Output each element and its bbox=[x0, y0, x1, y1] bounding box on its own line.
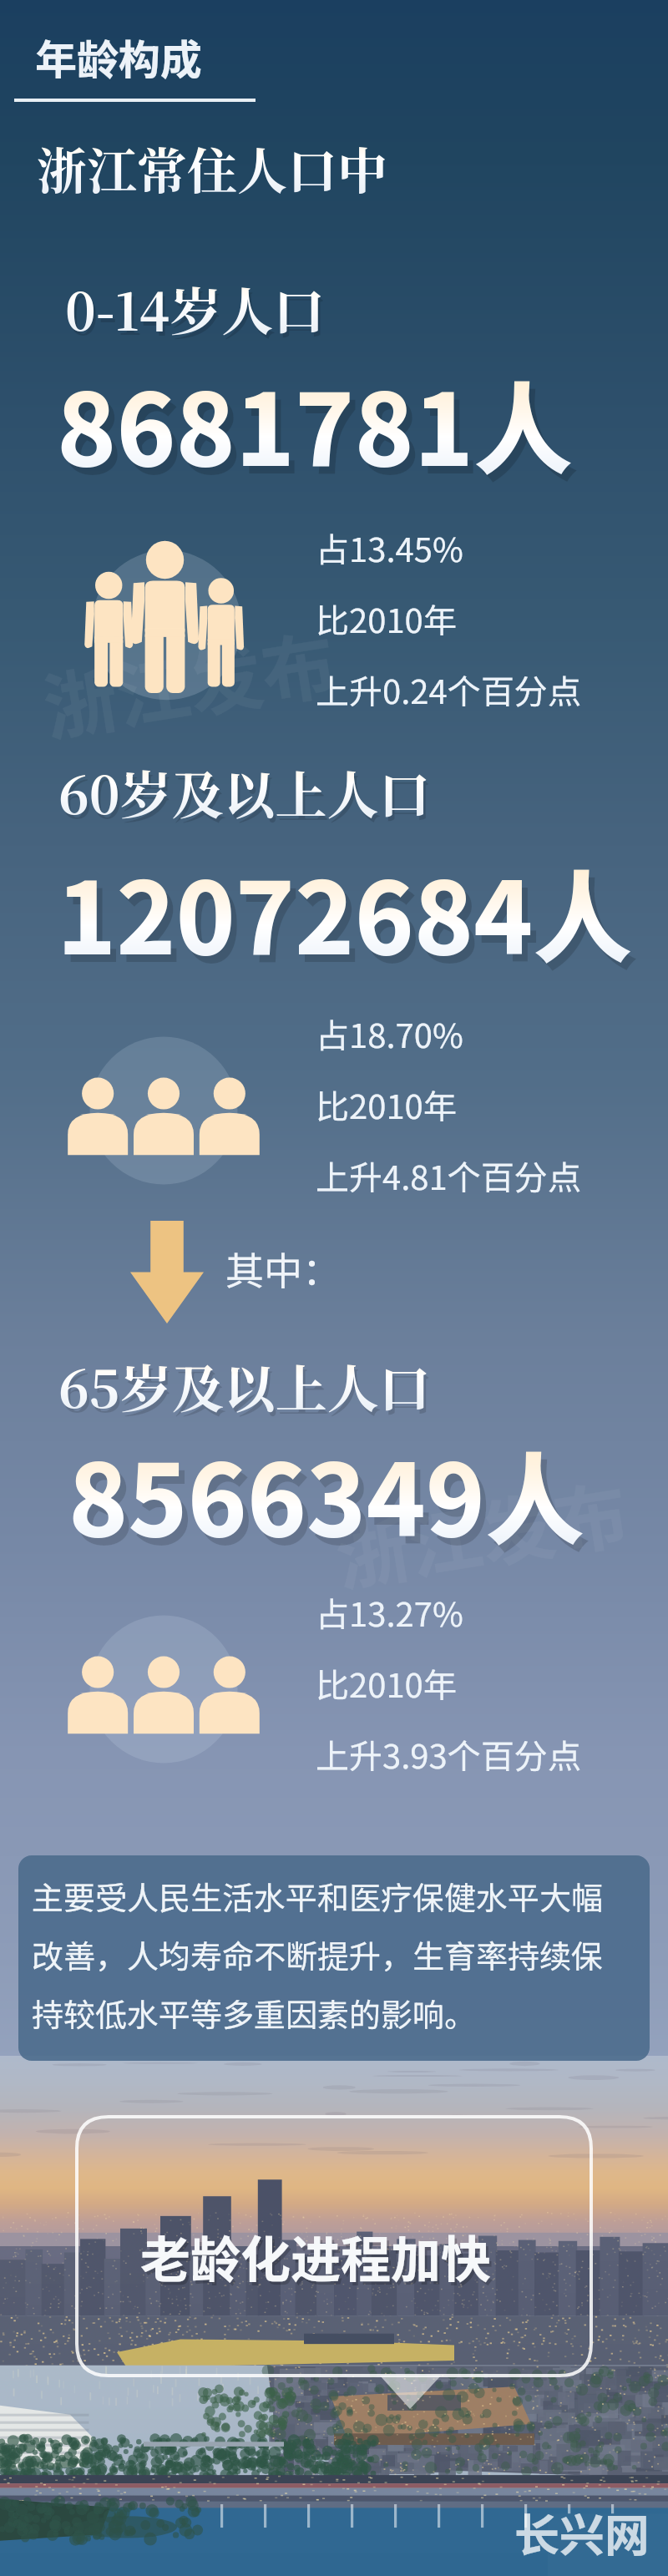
staticText: 8681781人 bbox=[57, 351, 573, 494]
staticText: 上升3.93个百分点 bbox=[316, 1730, 581, 1779]
staticText: 65岁及以上人口 bbox=[61, 1353, 433, 1427]
staticText: 老龄化进程加快 bbox=[143, 2223, 493, 2295]
staticText: 60岁及以上人口 bbox=[58, 755, 431, 829]
staticText: 上升4.81个百分点 bbox=[316, 1151, 581, 1200]
staticText: 浙江发布 bbox=[327, 1456, 635, 1606]
staticText: 长兴网 bbox=[514, 2499, 650, 2564]
staticText: 比2010年 bbox=[316, 595, 457, 643]
staticText: 12072684人 bbox=[57, 839, 633, 983]
staticText: 12072684人 bbox=[63, 847, 639, 990]
staticText: 其中： bbox=[225, 1241, 341, 1297]
staticText: 8566349人 bbox=[74, 1429, 590, 1572]
staticText: 8681781人 bbox=[63, 358, 579, 502]
staticText: 占13.27% bbox=[316, 1588, 463, 1637]
staticText: 主要受人民生活水平和医疗保健水平大幅改善，人均寿命不断提升，生育率持续保持较低水… bbox=[32, 1873, 616, 2036]
staticText: 占18.70% bbox=[316, 1010, 463, 1058]
staticText: 60岁及以上人口 bbox=[61, 759, 433, 833]
staticText: 0-14岁人口 bbox=[68, 276, 328, 350]
staticText: 上升0.24个百分点 bbox=[316, 666, 581, 714]
staticText: 8566349人 bbox=[68, 1421, 584, 1565]
staticText: 年龄构成 bbox=[35, 27, 202, 87]
staticText: 0-14岁人口 bbox=[65, 271, 326, 346]
staticText: 老龄化进程加快 bbox=[140, 2219, 491, 2292]
staticText: 比2010年 bbox=[316, 1081, 457, 1129]
staticText: 浙江发布 bbox=[35, 606, 343, 756]
staticText: 比2010年 bbox=[316, 1659, 457, 1708]
staticText: 65岁及以上人口 bbox=[58, 1349, 431, 1423]
staticText: 占13.45% bbox=[316, 524, 463, 572]
button[interactable]: 主要受人民生活水平和医疗保健水平大幅改善，人均寿命不断提升，生育率持续保持较低水… bbox=[18, 1855, 650, 2061]
staticText: 浙江常住人口中 bbox=[37, 132, 387, 204]
